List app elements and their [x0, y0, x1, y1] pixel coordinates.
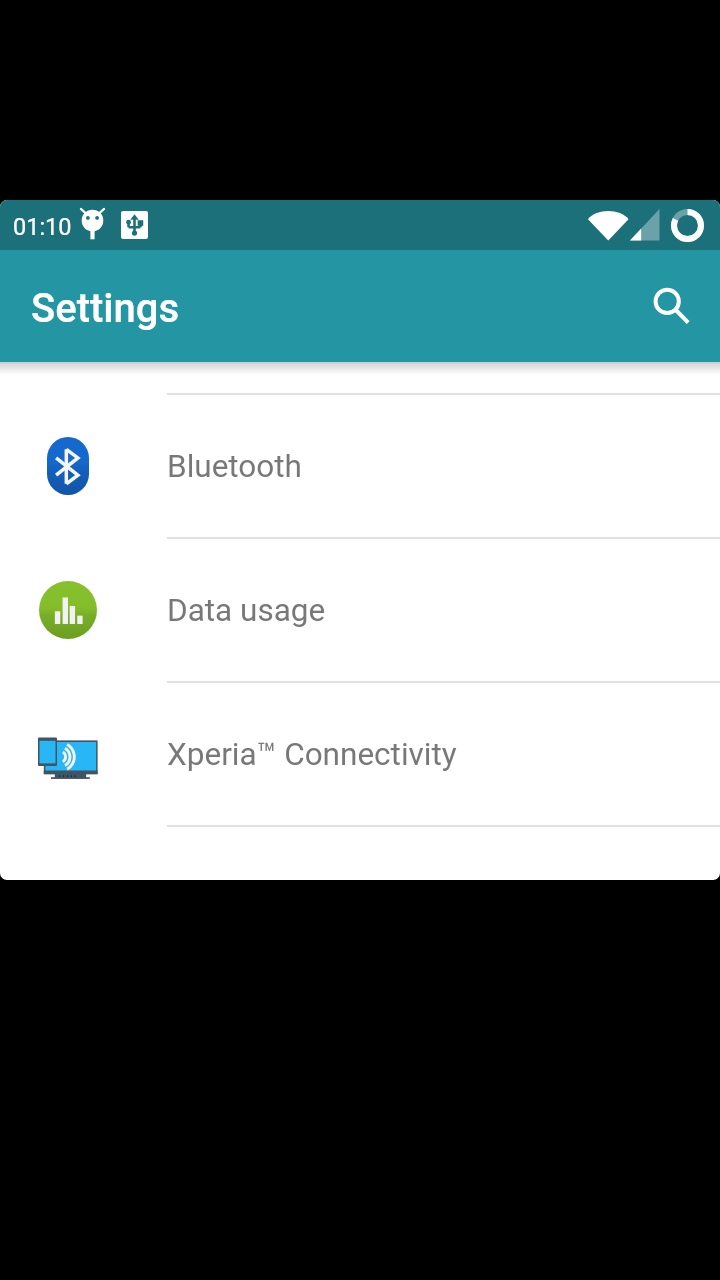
staticText: Settings [31, 285, 180, 332]
button[interactable]: Search [632, 266, 712, 346]
staticText: Xperia™ Connectivity [167, 736, 457, 773]
staticText: Bluetooth [167, 448, 302, 485]
button[interactable]: Xperia™ Connectivity [0, 683, 720, 825]
button[interactable]: Data usage [0, 539, 720, 681]
button[interactable]: Bluetooth [0, 395, 720, 537]
staticText: Data usage [167, 592, 326, 629]
staticText: 01:10 [13, 213, 72, 241]
